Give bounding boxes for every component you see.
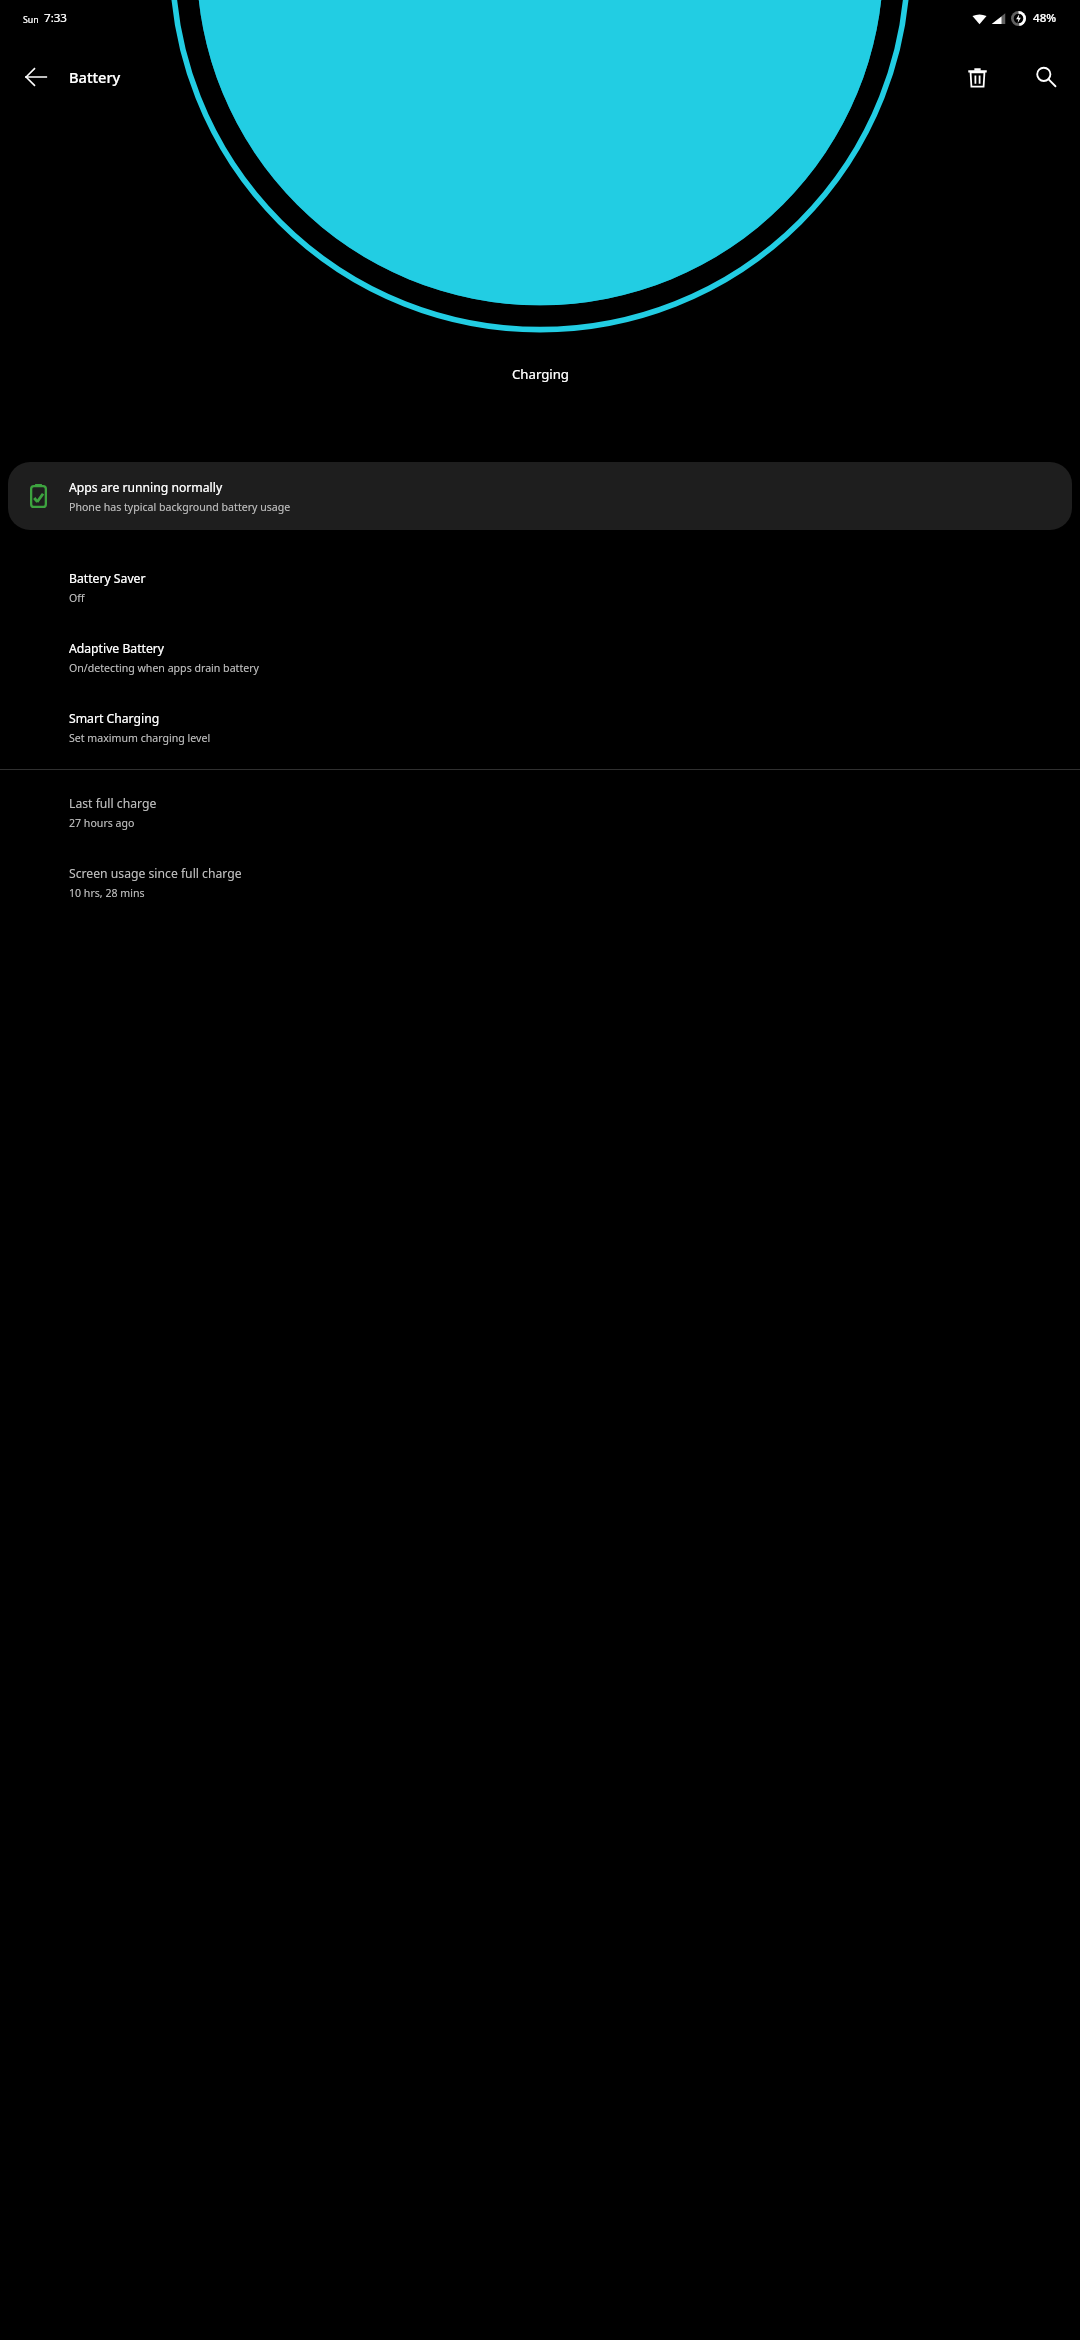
staticText: Set maximum charging level: [69, 731, 211, 745]
button[interactable]: Battery Saver: [0, 552, 1080, 622]
staticText: Adaptive Battery: [69, 640, 165, 657]
staticText: Phone has typical background battery usa…: [69, 500, 291, 514]
button[interactable]: Last full charge: [0, 777, 1080, 847]
staticText: Battery: [69, 67, 121, 87]
staticText: Charging: [512, 365, 569, 383]
staticText: 7:33: [44, 10, 68, 26]
button[interactable]: Screen usage since full charge: [0, 847, 1080, 917]
staticText: Sun: [23, 14, 39, 26]
staticText: Battery Saver: [69, 570, 146, 587]
staticText: Apps are running normally: [69, 479, 223, 496]
button[interactable]: Adaptive Battery: [0, 622, 1080, 692]
staticText: 27 hours ago: [69, 816, 135, 830]
staticText: 10 hrs, 28 mins: [69, 886, 145, 900]
staticText: 48%: [1033, 10, 1057, 26]
button[interactable]: Back: [11, 52, 61, 102]
button[interactable]: Apps are running normally: [8, 462, 1072, 530]
staticText: On/detecting when apps drain battery: [69, 661, 259, 675]
staticText: Screen usage since full charge: [69, 865, 242, 882]
staticText: Last full charge: [69, 795, 157, 812]
button[interactable]: Search: [1021, 52, 1071, 102]
button[interactable]: Smart Charging: [0, 692, 1080, 762]
staticText: Off: [69, 591, 85, 605]
staticText: Smart Charging: [69, 710, 160, 727]
button[interactable]: Delete: [952, 52, 1002, 102]
